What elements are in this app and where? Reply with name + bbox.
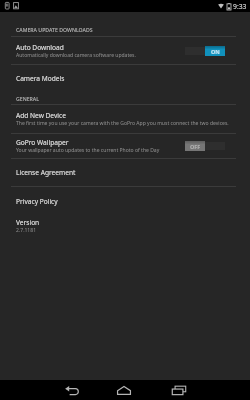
button[interactable]: GoPro Wallpaper [0,134,250,158]
staticText: Automatically download camera software u… [16,52,136,59]
staticText: CAMERA UPDATE DOWNLOADS [16,26,93,33]
button[interactable]: Privacy Policy [0,187,250,215]
button[interactable]: Recent apps [161,380,197,400]
staticText: Add New Device [16,111,66,120]
staticText: The first time you use your camera with … [16,120,229,127]
button[interactable]: Add New Device [0,105,250,133]
button[interactable]: Auto Download [0,37,250,64]
staticText: GoPro Wallpaper [16,138,69,147]
staticText: GENERAL [16,95,40,102]
staticText: License Agreement [16,168,76,177]
staticText: Version [16,218,40,227]
staticText: OFF [190,143,201,150]
staticText: Auto Download [16,43,64,52]
button[interactable]: Version [0,215,250,236]
staticText: ON [211,48,220,55]
button[interactable]: Home [106,380,142,400]
button[interactable]: License Agreement [0,159,250,186]
button[interactable]: Switch on [185,46,225,56]
staticText: Camera Models [16,74,65,83]
button[interactable]: Back [54,380,90,400]
staticText: Privacy Policy [16,197,58,206]
staticText: 9:33 [233,2,247,11]
staticText: 2.7.1181 [16,227,37,234]
button[interactable]: Camera Models [0,65,250,92]
staticText: Your wallpaper auto updates to the curre… [16,147,160,154]
button[interactable]: Switch off [185,141,225,151]
